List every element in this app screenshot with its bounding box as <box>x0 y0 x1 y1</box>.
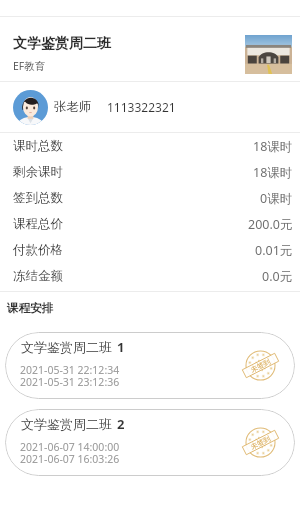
staticText: 2 <box>117 415 125 433</box>
staticText: 文学鉴赏周二班 <box>21 339 112 355</box>
other: 未签到 <box>244 426 277 459</box>
staticText: 0课时 <box>260 190 293 207</box>
staticText: EF教育 <box>13 59 46 73</box>
staticText: 2021-06-07 14:00:00 2021-06-07 16:03:26 <box>20 440 120 466</box>
button[interactable]: 文学鉴赏周二班 <box>5 332 295 399</box>
staticText: 18课时 <box>253 138 293 155</box>
staticText: 剩余课时 <box>13 164 63 180</box>
staticText: 1113322321 <box>107 99 176 115</box>
button[interactable]: 文学鉴赏周二班 <box>5 409 295 476</box>
staticText: 付款价格 <box>13 242 63 258</box>
staticText: 0.01元 <box>255 242 293 259</box>
staticText: 课程安排 <box>7 301 53 315</box>
staticText: 200.0元 <box>248 216 293 233</box>
button[interactable]: 文学鉴赏周二班 <box>0 17 300 81</box>
staticText: 0.0元 <box>262 268 293 285</box>
staticText: 签到总数 <box>13 190 63 206</box>
staticText: 未签到 <box>249 357 272 374</box>
staticText: 张老师 <box>54 99 92 115</box>
staticText: 冻结金额 <box>13 268 63 284</box>
staticText: 课程总价 <box>13 216 63 232</box>
button[interactable]: 张老师 <box>0 82 300 132</box>
staticText: 未签到 <box>249 434 272 451</box>
staticText: 文学鉴赏周二班 <box>21 416 112 432</box>
staticText: 18课时 <box>253 164 293 181</box>
staticText: 课时总数 <box>13 138 63 154</box>
staticText: 1 <box>117 338 125 356</box>
other: 未签到 <box>244 349 277 382</box>
staticText: 2021-05-31 22:12:34 2021-05-31 23:12:36 <box>20 363 120 389</box>
staticText: 文学鉴赏周二班 <box>13 35 111 53</box>
